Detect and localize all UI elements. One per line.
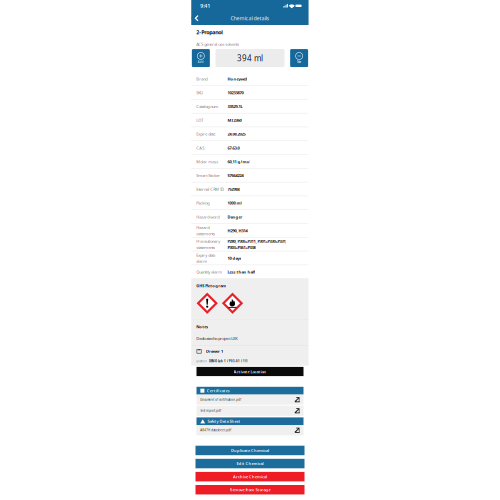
staticText: Danger xyxy=(227,214,242,219)
staticText: 10233870 xyxy=(227,90,243,95)
staticText: Duplicate Chemical xyxy=(231,448,269,453)
staticText: Catalog num. xyxy=(196,104,219,109)
staticText: 9:41 xyxy=(200,2,210,9)
staticText: Smart Sticker xyxy=(196,173,220,178)
staticText: Precautionary xyxy=(196,239,220,244)
staticText: 60,11 g/mol xyxy=(227,159,250,164)
button[interactable]: Take xyxy=(290,49,308,67)
staticText: Document of certification.pdf xyxy=(200,398,241,401)
staticText: Test report.pdf xyxy=(200,409,221,412)
staticText: Hazard xyxy=(196,225,209,230)
staticText: Expire date xyxy=(196,131,215,137)
staticText: 67-63-0 xyxy=(227,145,239,150)
staticText: Edit Chemical xyxy=(236,461,263,466)
staticText: GHS Pictogram xyxy=(196,283,226,288)
staticText: Hazard word xyxy=(196,214,219,219)
staticText: Packing xyxy=(196,200,209,206)
staticText: Internal CRM ID xyxy=(196,187,224,192)
staticText: 1000 ml xyxy=(227,200,241,206)
staticText: Honeywell xyxy=(227,76,247,81)
button[interactable]: Back xyxy=(194,11,198,25)
staticText: Take xyxy=(297,60,302,64)
button[interactable]: Test report.pdf xyxy=(196,406,303,416)
button[interactable]: Add xyxy=(192,49,210,67)
staticText: CAS xyxy=(196,145,204,150)
staticText: Brand xyxy=(196,76,207,81)
staticText: Chemical details xyxy=(230,15,269,22)
staticText: 752984 xyxy=(227,187,239,192)
staticText: 394 ml xyxy=(237,53,263,63)
staticText: 10 days xyxy=(227,256,241,261)
button[interactable]: Edit Chemical xyxy=(195,459,304,468)
staticText: Molar mass xyxy=(196,159,218,164)
staticText: Quantity alarm xyxy=(196,269,222,275)
staticText: P280, P305+P311, P301+P330+P331, xyxy=(227,239,286,244)
staticText: LOT xyxy=(196,118,203,123)
staticText: A847H data sheet.pdf xyxy=(200,428,231,432)
staticText: Less than half xyxy=(227,269,255,275)
staticText: Activate Location xyxy=(233,369,266,374)
staticText: statements xyxy=(196,231,215,236)
staticText: 57664224 xyxy=(227,173,243,178)
button[interactable]: Document of certification.pdf xyxy=(196,395,303,405)
button[interactable]: Remove from Storage xyxy=(195,485,304,494)
staticText: Archive Chemical xyxy=(233,474,267,479)
staticText: Safety Data Sheet xyxy=(207,419,240,424)
staticText: alarm xyxy=(196,259,207,264)
staticText: Add xyxy=(198,60,204,64)
staticText: Remove from Storage xyxy=(229,487,270,492)
staticText: Drawer 1 xyxy=(206,349,223,354)
staticText: Dedicated to project LEK xyxy=(196,336,237,341)
staticText: MI2360 xyxy=(227,118,241,123)
staticText: H290, H314 xyxy=(227,228,247,233)
staticText: Certificates xyxy=(207,388,230,393)
staticText: ACS general use solvents xyxy=(196,41,239,47)
button[interactable]: Activate Location xyxy=(196,367,303,376)
button[interactable]: Duplicate Chemical xyxy=(195,446,304,455)
staticText: P303+P361+P338 xyxy=(227,245,255,250)
button[interactable]: Archive Chemical xyxy=(195,472,304,481)
staticText: Expiry date xyxy=(196,252,215,258)
staticText: 2-Propanol xyxy=(196,29,223,36)
button[interactable]: A847H data sheet.pdf xyxy=(196,425,303,435)
staticText: Notes xyxy=(196,324,208,329)
staticText: Location xyxy=(196,359,207,363)
staticText: 33529-1L xyxy=(227,104,242,109)
staticText: 24.08.2025 xyxy=(227,131,245,137)
staticText: SKU xyxy=(196,90,203,95)
staticText: DEMO Lab 1 / P03-01 / 1\1 xyxy=(209,359,248,363)
staticText: statements xyxy=(196,245,215,250)
